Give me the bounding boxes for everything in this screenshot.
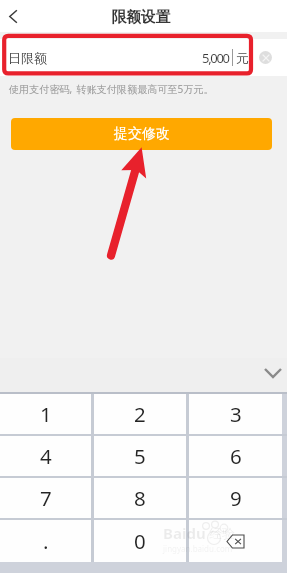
staticText: 日限额: [8, 50, 47, 66]
button[interactable]: Hide keyboard: [260, 360, 286, 386]
button[interactable]: .: [0, 520, 91, 562]
button[interactable]: 0: [94, 520, 186, 562]
staticText: 2: [134, 400, 146, 428]
staticText: .: [43, 527, 49, 555]
staticText: 9: [230, 484, 242, 512]
button[interactable]: 7: [0, 478, 91, 518]
staticText: 经验: [209, 525, 235, 541]
staticText: 1: [40, 400, 52, 428]
button[interactable]: Backspace: [189, 520, 282, 562]
button[interactable]: 5: [94, 436, 186, 476]
staticText: jingyan.baidu.com: [163, 543, 233, 554]
button[interactable]: 3: [189, 394, 282, 434]
button[interactable]: 1: [0, 394, 91, 434]
staticText: 使用支付密码, 转账支付限额最高可至5万元。: [9, 82, 214, 96]
button[interactable]: 6: [189, 436, 282, 476]
staticText: 6: [230, 442, 242, 470]
staticText: 提交修改: [114, 125, 170, 143]
staticText: 0: [134, 527, 146, 555]
staticText: Baidu: [163, 523, 206, 543]
staticText: 限额设置: [111, 8, 171, 27]
staticText: 4: [40, 442, 52, 470]
staticText: 5,000: [202, 49, 229, 67]
button[interactable]: 8: [94, 478, 186, 518]
button[interactable]: 2: [94, 394, 186, 434]
button[interactable]: Clear: [259, 51, 272, 64]
staticText: 元: [236, 50, 249, 66]
button[interactable]: 9: [189, 478, 282, 518]
button[interactable]: 提交修改: [11, 118, 272, 150]
staticText: 5: [134, 442, 146, 470]
button[interactable]: Back: [0, 0, 26, 32]
staticText: 3: [230, 400, 242, 428]
staticText: 7: [40, 484, 52, 512]
button[interactable]: 4: [0, 436, 91, 476]
staticText: 8: [134, 484, 146, 512]
other: Backspace: [227, 535, 244, 548]
